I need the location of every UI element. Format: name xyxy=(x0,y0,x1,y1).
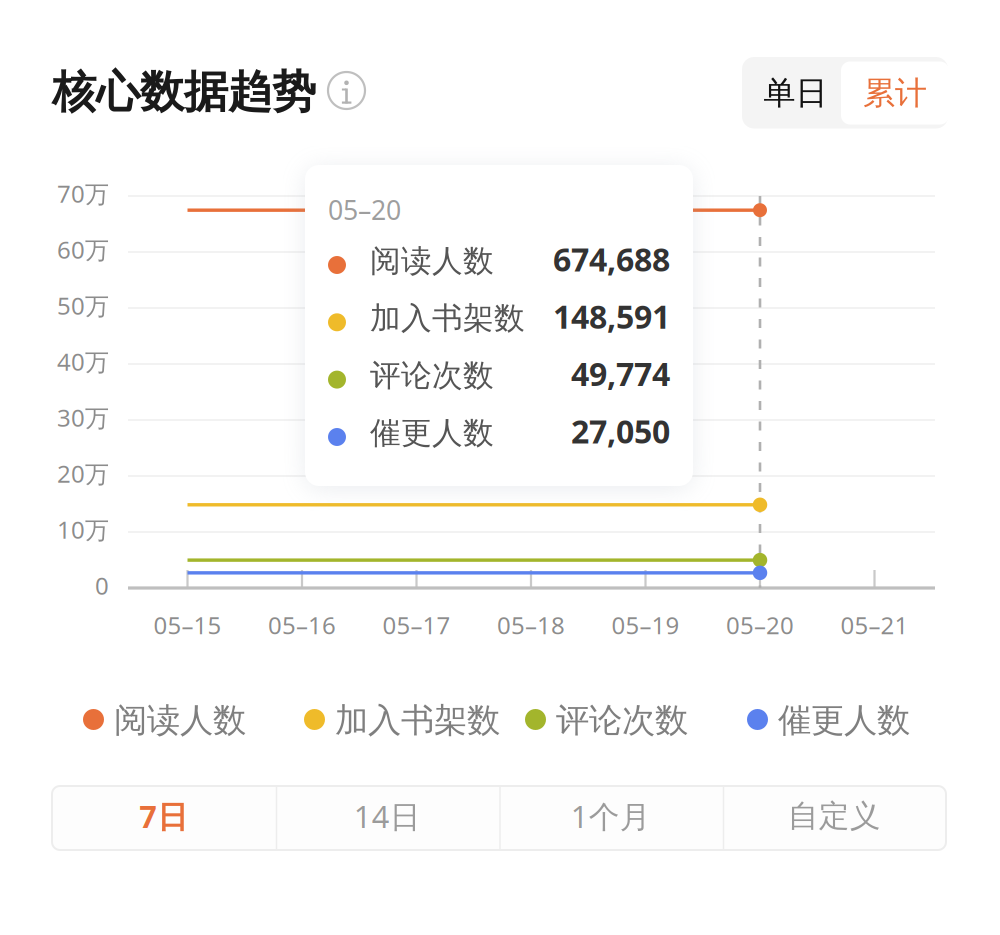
button[interactable]: 14日 xyxy=(275,786,499,850)
staticText: 60万 xyxy=(57,234,109,265)
staticText: 674,688 xyxy=(553,238,670,280)
staticText: 27,050 xyxy=(571,410,670,452)
staticText: 05–19 xyxy=(611,609,679,641)
staticText: 评论次数 xyxy=(370,357,494,394)
staticText: 核心数据趋势 xyxy=(52,65,316,119)
staticText: 加入书架数 xyxy=(335,700,500,741)
staticText: 阅读人数 xyxy=(114,700,246,741)
staticText: 催更人数 xyxy=(370,414,494,452)
staticText: 40万 xyxy=(57,346,109,377)
staticText: 累计 xyxy=(863,73,927,113)
staticText: 49,774 xyxy=(571,352,670,395)
button[interactable]: 7日 xyxy=(52,786,275,850)
button[interactable]: 单日 xyxy=(747,62,844,124)
staticText: 05–20 xyxy=(328,192,401,227)
staticText: 14日 xyxy=(354,796,421,836)
staticText: 单日 xyxy=(763,73,827,113)
staticText: 148,591 xyxy=(553,295,670,338)
staticText: 加入书架数 xyxy=(370,299,525,337)
staticText: 阅读人数 xyxy=(370,242,494,280)
button[interactable]: 1个月 xyxy=(499,786,722,850)
staticText: 0 xyxy=(95,570,109,601)
staticText: 评论次数 xyxy=(556,700,688,741)
button[interactable]: Info xyxy=(328,72,365,109)
staticText: 50万 xyxy=(57,290,109,321)
staticText: 自定义 xyxy=(788,797,881,835)
staticText: 70万 xyxy=(57,178,109,209)
staticText: 1个月 xyxy=(571,796,651,836)
staticText: 20万 xyxy=(57,458,109,489)
staticText: 05–15 xyxy=(153,609,221,641)
staticText: 05–20 xyxy=(726,609,794,641)
staticText: 10万 xyxy=(57,514,109,545)
staticText: 05–21 xyxy=(840,609,908,641)
staticText: 催更人数 xyxy=(778,700,910,741)
staticText: 05–16 xyxy=(268,609,336,641)
staticText: 7日 xyxy=(139,796,188,836)
staticText: 30万 xyxy=(57,402,109,433)
button[interactable]: 自定义 xyxy=(722,786,946,850)
staticText: 05–18 xyxy=(497,609,565,641)
button[interactable]: 累计 xyxy=(841,61,949,124)
staticText: 05–17 xyxy=(382,609,450,641)
